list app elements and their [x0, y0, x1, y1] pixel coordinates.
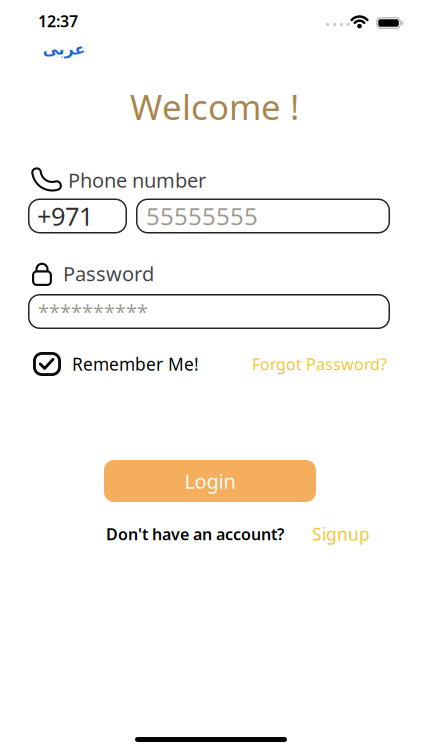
- textField[interactable]: **********: [38, 298, 390, 325]
- button[interactable]: Signup: [312, 522, 370, 545]
- staticText: **********: [38, 298, 148, 325]
- staticText: Welcome !: [130, 83, 299, 129]
- button[interactable]: Forgot Password?: [252, 353, 387, 375]
- staticText: Signup: [312, 522, 370, 545]
- staticText: +971: [37, 199, 93, 233]
- button[interactable]: Login: [104, 460, 316, 502]
- staticText: Don't have an account?: [106, 523, 284, 545]
- staticText: 55555555: [146, 200, 258, 232]
- staticText: 12:37: [38, 10, 78, 32]
- staticText: Forgot Password?: [252, 353, 387, 375]
- textField[interactable]: +971: [37, 199, 127, 233]
- textField[interactable]: 55555555: [146, 200, 390, 232]
- staticText: Login: [184, 468, 235, 494]
- staticText: Phone number: [68, 167, 206, 193]
- staticText: Remember Me!: [72, 352, 199, 375]
- staticText: Password: [63, 260, 154, 287]
- button[interactable]: Remember Me!: [33, 352, 199, 376]
- button[interactable]: عربى: [42, 40, 85, 58]
- staticText: عربى: [42, 40, 85, 58]
